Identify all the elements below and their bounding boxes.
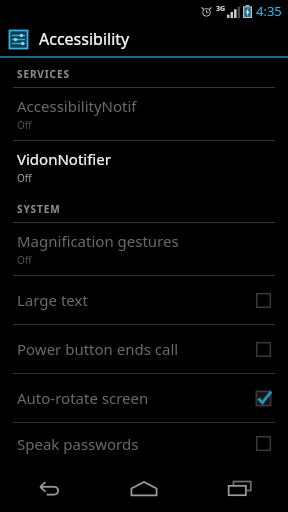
staticText: Off (17, 253, 32, 267)
button[interactable]: Back (0, 464, 96, 512)
staticText: Accessibility (39, 28, 130, 50)
button[interactable]: Home (96, 464, 192, 512)
other: Toggle setting (255, 435, 272, 452)
staticText: Magnification gestures (17, 231, 179, 251)
staticText: Off (17, 171, 32, 185)
button[interactable]: Power button ends call (0, 325, 288, 373)
staticText: 3G (216, 4, 226, 14)
button[interactable]: Magnification gestures (0, 223, 288, 275)
button[interactable]: Speak passwords (0, 423, 288, 464)
staticText: Power button ends call (17, 339, 255, 359)
staticText: 4:35 (256, 2, 282, 20)
button[interactable]: Recent apps (192, 464, 288, 512)
button[interactable]: AccessibilityNotif (0, 88, 288, 140)
staticText: Auto-rotate screen (17, 388, 255, 408)
button[interactable]: Auto-rotate screen (0, 374, 288, 422)
staticText: VidonNotifier (17, 149, 111, 169)
other: Toggle setting (255, 390, 272, 407)
button[interactable]: VidonNotifier (0, 141, 288, 193)
staticText: SERVICES (17, 67, 70, 81)
staticText: SYSTEM (17, 202, 61, 216)
other: Toggle setting (255, 292, 272, 309)
other: Toggle setting (255, 341, 272, 358)
staticText: Speak passwords (17, 434, 255, 454)
staticText: AccessibilityNotif (17, 96, 137, 116)
staticText: Large text (17, 290, 255, 310)
button[interactable]: Large text (0, 276, 288, 324)
staticText: Off (17, 118, 32, 132)
